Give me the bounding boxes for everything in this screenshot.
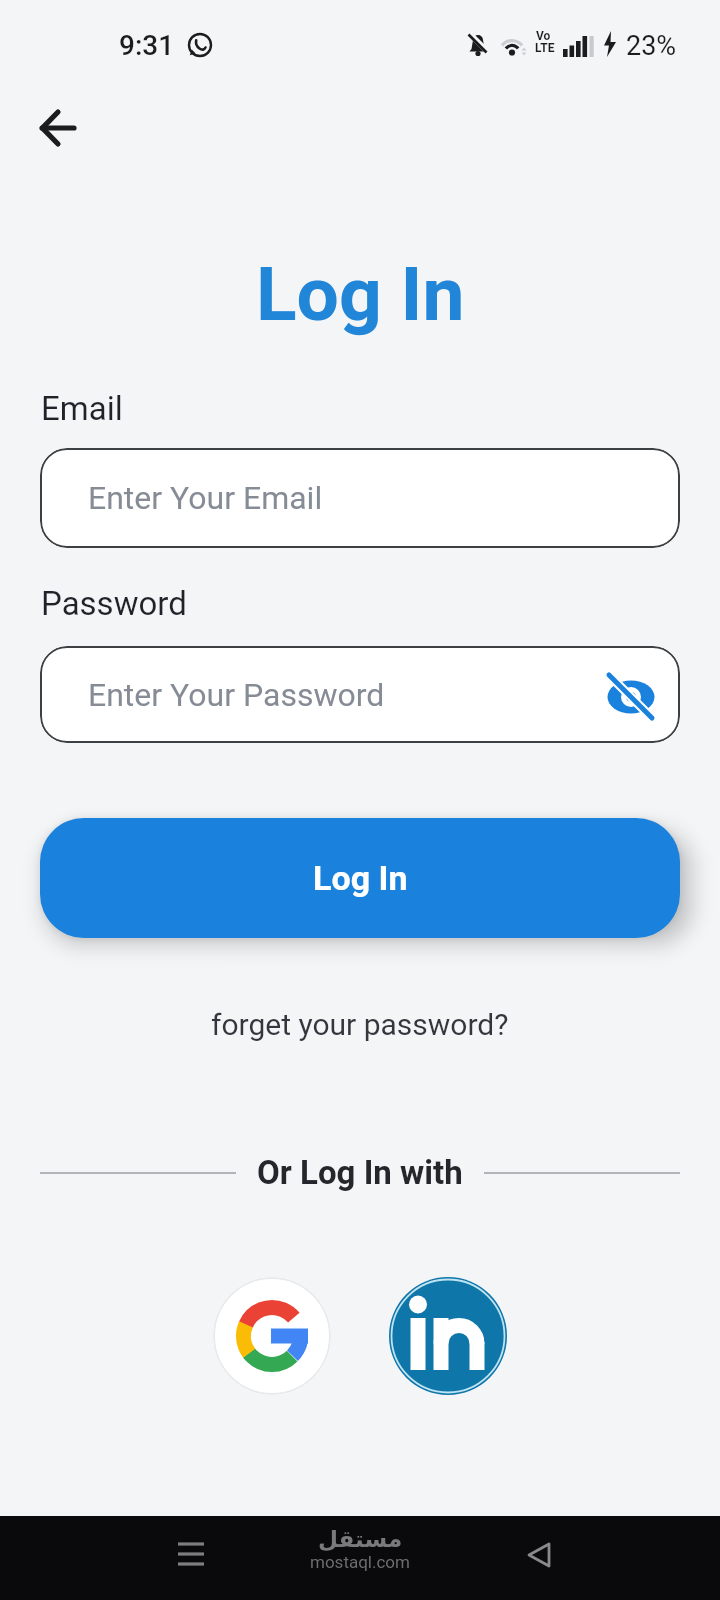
- staticText: Enter Your Email: [88, 479, 323, 517]
- button[interactable]: [524, 1541, 554, 1569]
- staticText: 23%: [626, 30, 677, 62]
- staticText: LTE: [535, 41, 555, 55]
- button[interactable]: [177, 1541, 207, 1569]
- staticText: Email: [41, 389, 123, 428]
- staticText: Or Log In with: [257, 1153, 463, 1192]
- staticText: 9:31: [119, 29, 175, 62]
- staticText: mostaql.com: [310, 1552, 410, 1572]
- staticText: Log In: [256, 250, 465, 338]
- button[interactable]: Enter Your Password: [40, 646, 680, 743]
- staticText: Log In: [313, 858, 408, 898]
- staticText: مستقل: [318, 1526, 403, 1553]
- button[interactable]: Enter Your Email: [40, 448, 680, 548]
- button[interactable]: forget your password?: [211, 1007, 509, 1042]
- staticText: Vo: [536, 29, 551, 43]
- button[interactable]: [213, 1277, 331, 1395]
- button[interactable]: Log In: [40, 818, 680, 938]
- button[interactable]: [389, 1277, 507, 1395]
- staticText: Password: [41, 584, 187, 623]
- button[interactable]: [36, 106, 80, 150]
- button[interactable]: [607, 673, 655, 721]
- staticText: Enter Your Password: [88, 676, 385, 714]
